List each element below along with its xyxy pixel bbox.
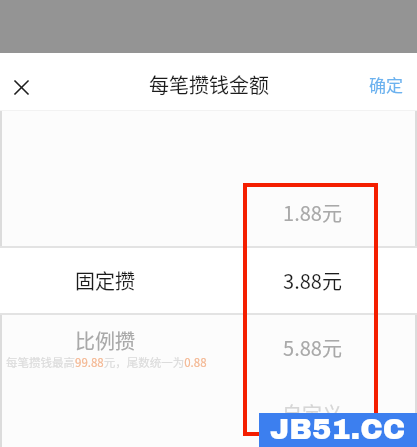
button[interactable]: 自定义	[242, 393, 382, 433]
staticText: 3.88元	[283, 266, 342, 295]
staticText: 比例攒	[75, 326, 135, 355]
staticText: 每笔攒钱最高99.88元，尾数统一为0.88	[6, 354, 207, 371]
staticText: 自定义	[282, 399, 342, 428]
button[interactable]: 固定攒	[35, 260, 175, 300]
button[interactable]: Close	[0, 66, 43, 109]
staticText: 5.88元	[283, 333, 342, 362]
staticText: 1.88元	[283, 198, 342, 227]
button[interactable]: 确定	[355, 62, 417, 107]
staticText: JB51.CC	[270, 414, 406, 446]
button[interactable]: 比例攒	[35, 320, 175, 360]
staticText: 固定攒	[75, 266, 135, 295]
staticText: 确定	[369, 72, 403, 97]
button[interactable]: 5.88元	[242, 327, 382, 367]
button[interactable]: 3.88元	[242, 260, 382, 300]
button[interactable]: 1.88元	[242, 192, 382, 232]
staticText: 每笔攒钱金额	[149, 70, 269, 99]
